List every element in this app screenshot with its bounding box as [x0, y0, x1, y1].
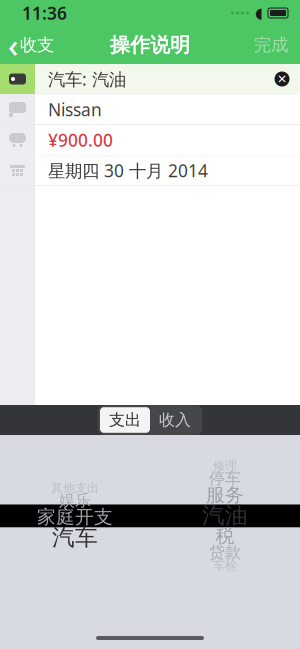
staticText: 汽车 [52, 524, 98, 551]
staticText: 支出 [109, 410, 141, 430]
staticText: 税 [215, 524, 234, 547]
button[interactable]: 清除 [274, 71, 290, 87]
staticText: Nissan [48, 98, 102, 121]
staticText: 11:36 [22, 1, 67, 24]
staticText: 收支 [20, 34, 54, 56]
staticText: 星期四 30 十月 2014 [48, 159, 208, 182]
staticText: 贷款 [209, 543, 241, 562]
staticText: 服务 [206, 483, 244, 506]
staticText: 修理 [213, 459, 237, 473]
staticText: 收入 [159, 410, 191, 430]
staticText: 其他支出 [51, 481, 99, 495]
staticText: ◖ [255, 5, 263, 21]
staticText: 家庭开支 [37, 505, 113, 528]
staticText: ‹ [8, 24, 18, 66]
staticText: 操作说明 [110, 33, 190, 57]
staticText: 车检 [213, 558, 237, 573]
button[interactable]: 支出 [100, 407, 150, 433]
staticText: 停车 [209, 469, 241, 488]
staticText: 汽油 [202, 502, 248, 529]
staticText: ¥900.00 [48, 128, 113, 151]
staticText: ✕ [277, 72, 287, 86]
staticText: 完成 [254, 34, 288, 56]
button[interactable]: 收入 [150, 407, 200, 433]
button[interactable]: ‹ [0, 18, 54, 72]
button[interactable]: 完成 [254, 28, 300, 62]
staticText: 汽车: 汽油 [48, 67, 126, 90]
staticText: 娱乐 [59, 491, 91, 510]
